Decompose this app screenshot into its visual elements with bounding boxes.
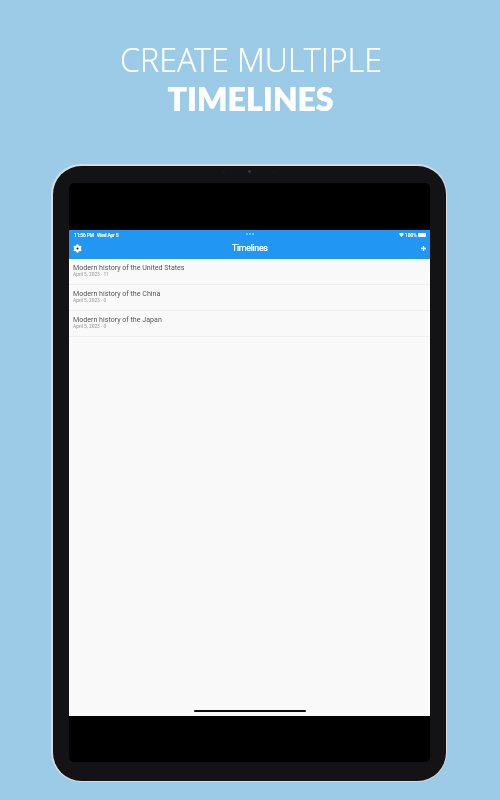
staticText: Modern history of the Japan: [73, 315, 162, 323]
staticText: 100%: [405, 232, 417, 238]
staticText: Modern history of the United States: [73, 263, 185, 271]
button[interactable]: Add timeline: [417, 238, 430, 258]
staticText: 11:56 PM Wed Apr 5: [74, 232, 119, 238]
button[interactable]: Modern history of the United States: [69, 259, 430, 284]
staticText: CREATE MULTIPLE: [120, 38, 382, 82]
button[interactable]: Modern history of the China: [69, 285, 430, 310]
staticText: Modern history of the China: [73, 289, 161, 297]
staticText: April 5, 2023 · 0: [73, 298, 107, 304]
button[interactable]: Modern history of the Japan: [69, 311, 430, 336]
button[interactable]: Settings: [69, 238, 86, 258]
staticText: TIMELINES: [167, 79, 334, 117]
staticText: Timelines: [232, 243, 268, 253]
staticText: April 5, 2023 · 0: [73, 324, 107, 330]
staticText: April 5, 2023 · 11: [73, 272, 109, 278]
